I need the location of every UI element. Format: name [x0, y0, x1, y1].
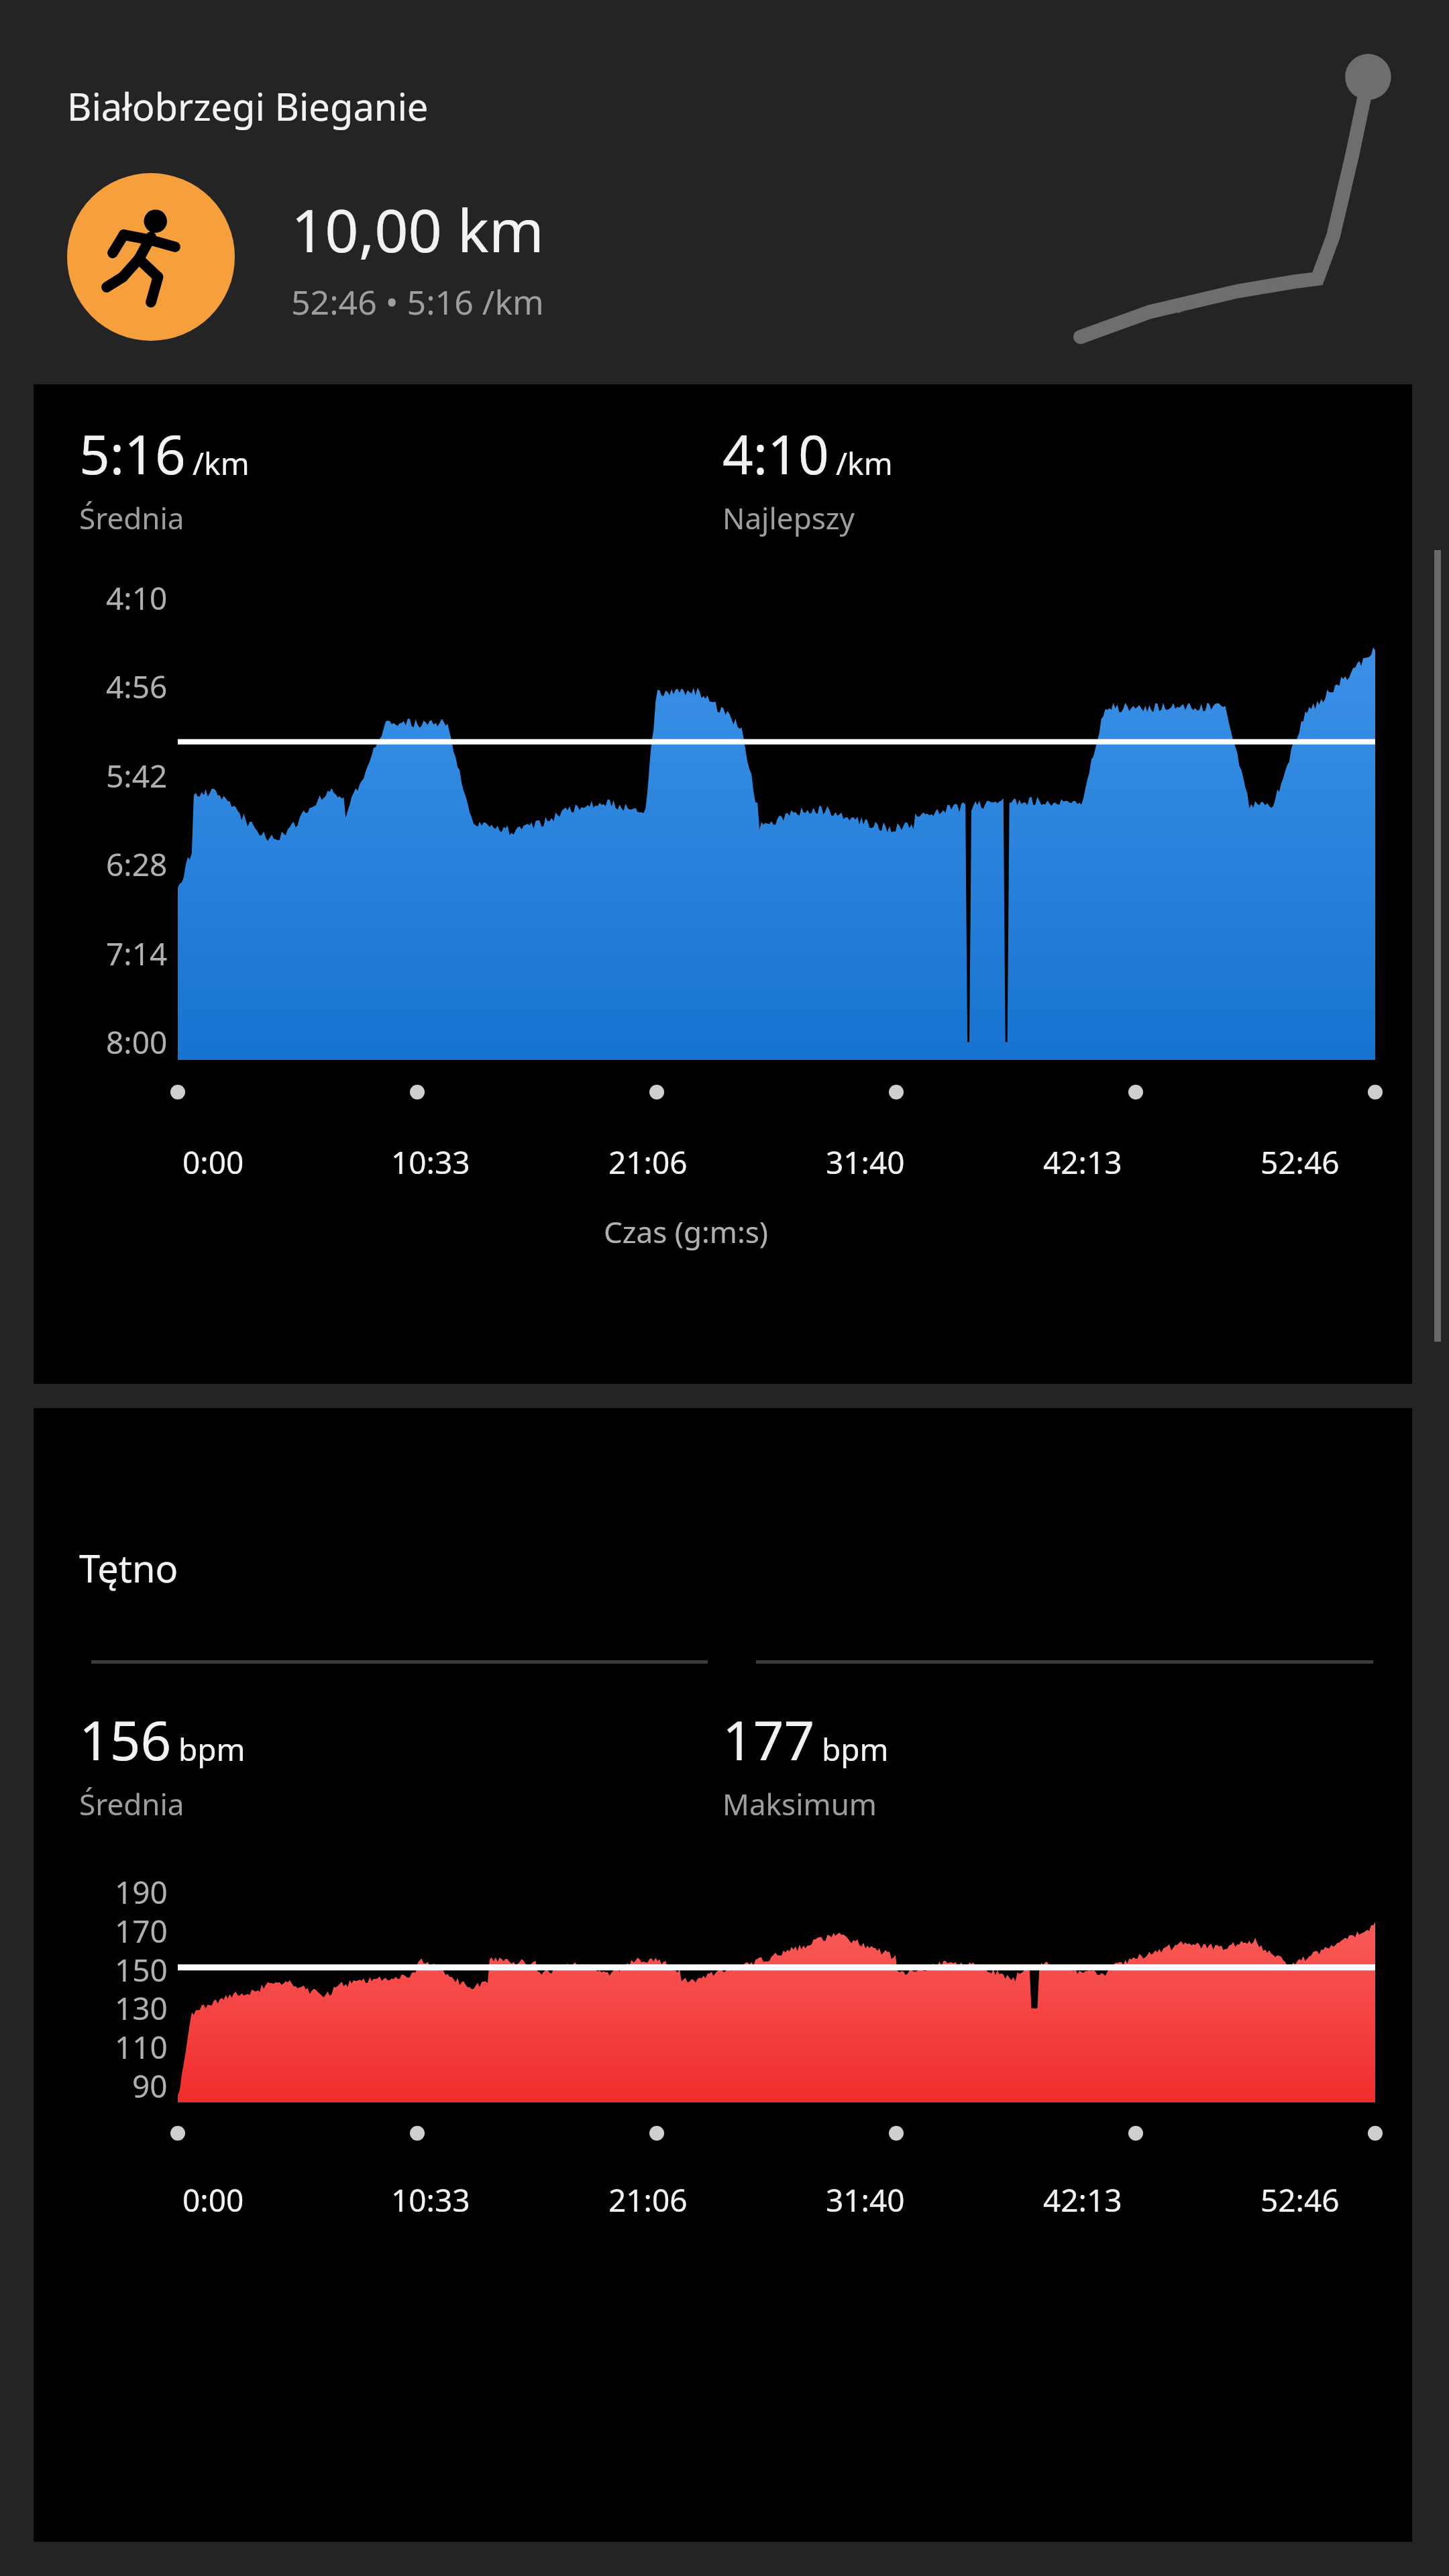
staticText: Maksimum	[722, 1784, 877, 1824]
staticText: 10:33	[391, 2179, 470, 2221]
staticText: 0:00	[182, 1141, 244, 1183]
staticText: 5:42	[106, 755, 168, 794]
staticText: Średnia	[79, 498, 184, 538]
staticText: 90	[132, 2065, 168, 2102]
staticText: 52:46	[1260, 1141, 1340, 1183]
staticText: /km	[193, 442, 250, 484]
staticText: 21:06	[608, 1141, 688, 1183]
staticText: 42:13	[1043, 2179, 1122, 2221]
button[interactable]: 5:16	[34, 384, 1412, 1384]
staticText: 177	[722, 1703, 815, 1776]
staticText: /km	[836, 442, 893, 484]
staticText: 10,00 km	[291, 189, 545, 270]
staticText: 130	[115, 1987, 168, 2025]
staticText: Średnia	[79, 1784, 184, 1824]
staticText: bpm	[178, 1728, 246, 1770]
other: Route map	[1073, 47, 1422, 362]
staticText: 4:10	[722, 417, 829, 490]
staticText: 190	[115, 1871, 168, 1909]
staticText: 31:40	[826, 2179, 905, 2221]
staticText: 8:00	[106, 1021, 168, 1060]
staticText: 31:40	[826, 1141, 905, 1183]
staticText: 150	[115, 1949, 168, 1986]
staticText: bpm	[822, 1728, 889, 1770]
staticText: Najlepszy	[722, 498, 855, 538]
staticText: 10:33	[391, 1141, 470, 1183]
staticText: Białobrzegi Bieganie	[67, 80, 429, 131]
staticText: 52:46	[1260, 2179, 1340, 2221]
staticText: 4:10	[106, 577, 168, 616]
staticText: 6:28	[106, 843, 168, 882]
staticText: 156	[79, 1703, 172, 1776]
staticText: Tętno	[79, 1542, 178, 1593]
staticText: 110	[115, 2026, 168, 2063]
button[interactable]: Route map	[0, 0, 1449, 376]
staticText: 0:00	[182, 2179, 244, 2221]
staticText: 170	[115, 1910, 168, 1947]
other: Running activity	[67, 173, 235, 341]
staticText: 42:13	[1043, 1141, 1122, 1183]
staticText: 7:14	[106, 932, 168, 971]
staticText: 5:16	[79, 417, 186, 490]
staticText: Czas (g:m:s)	[34, 1212, 1338, 1252]
staticText: 4:56	[106, 665, 168, 704]
staticText: 21:06	[608, 2179, 688, 2221]
staticText: 52:46 • 5:16 /km	[291, 279, 544, 325]
button[interactable]: Tętno	[34, 1408, 1412, 2542]
